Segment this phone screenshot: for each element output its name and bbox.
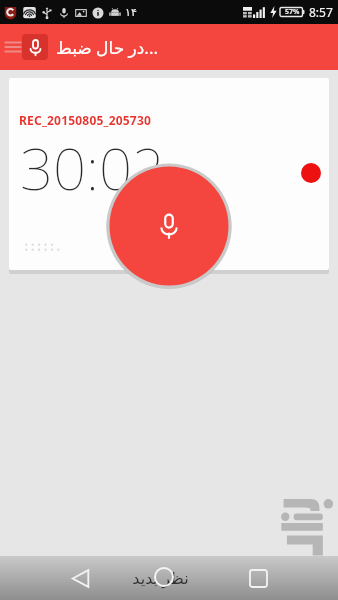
button[interactable]: Stop recording	[106, 163, 232, 289]
button[interactable]: Back	[60, 558, 100, 598]
staticText: ۱۴	[125, 6, 137, 19]
button[interactable]: REC_20150805_205730	[9, 78, 329, 270]
staticText: 30:02	[20, 128, 166, 207]
button[interactable]: Recent apps	[238, 558, 278, 598]
staticText: 8:57	[309, 4, 333, 20]
staticText: در حال ضبط...	[56, 36, 159, 59]
button[interactable]: Home	[154, 567, 174, 587]
button[interactable]: Recording	[22, 34, 48, 60]
button[interactable]: نظر بدید	[132, 567, 189, 589]
button[interactable]: Menu	[0, 34, 26, 60]
staticText: 57%	[285, 7, 300, 17]
staticText: REC_20150805_205730	[19, 112, 152, 128]
